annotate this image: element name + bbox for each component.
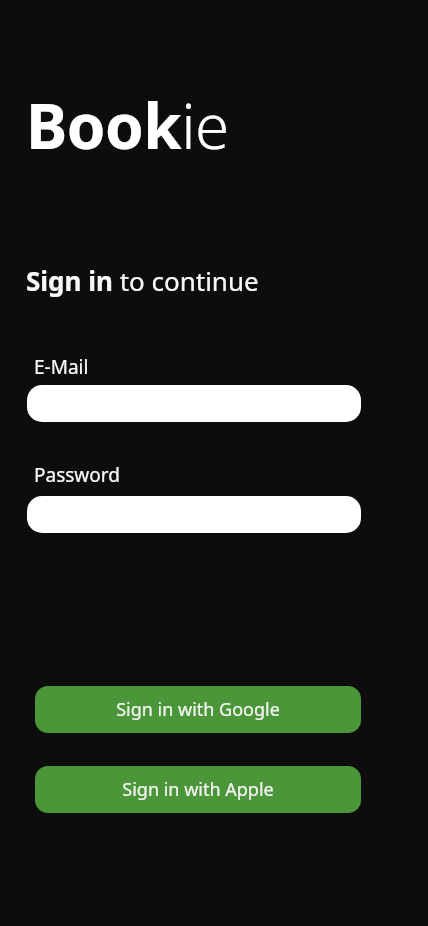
staticText: Sign in with Apple (122, 777, 274, 802)
button[interactable] (27, 496, 361, 533)
staticText: Sign in with Google (116, 697, 280, 722)
staticText: Bookie (26, 83, 229, 167)
button[interactable]: Sign in with Apple (35, 766, 361, 813)
button[interactable] (27, 385, 361, 422)
staticText: E-Mail (34, 354, 89, 380)
staticText: Sign in to continue (26, 263, 259, 298)
staticText: Password (34, 462, 120, 488)
button[interactable]: Sign in with Google (35, 686, 361, 733)
